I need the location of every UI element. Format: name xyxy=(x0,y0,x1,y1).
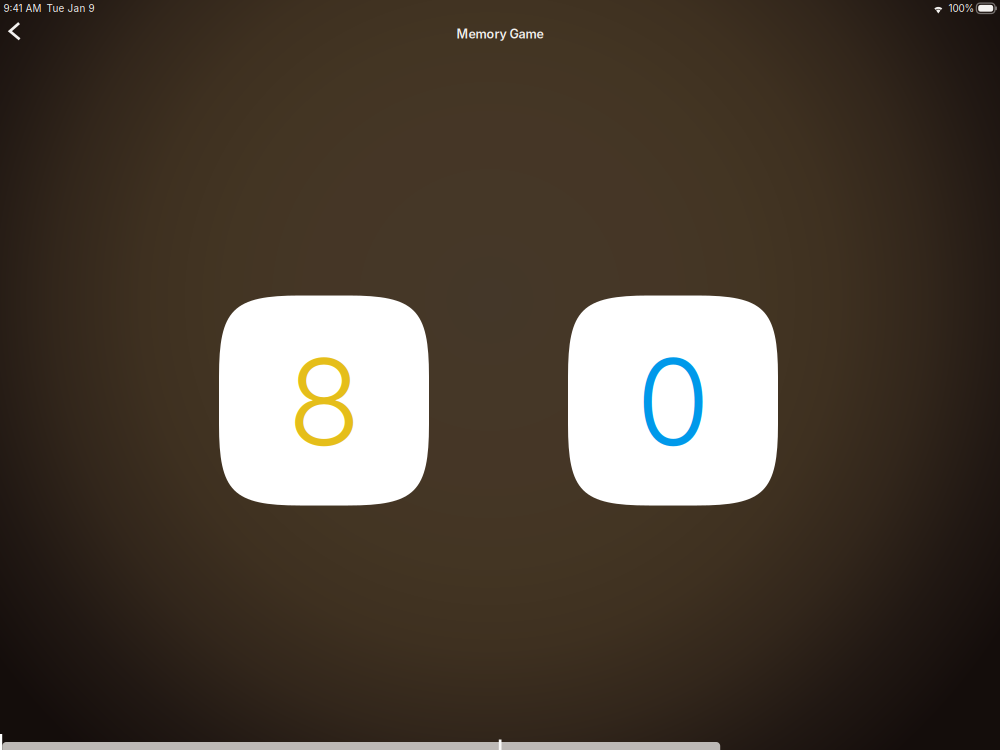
button[interactable]: Back xyxy=(0,16,30,46)
button[interactable]: 8 xyxy=(219,295,429,505)
button[interactable]: 0 xyxy=(568,295,778,505)
staticText: Memory Game xyxy=(456,26,543,42)
staticText: 9:41 AM xyxy=(3,2,41,14)
staticText: Tue Jan 9 xyxy=(46,2,94,14)
staticText: 0 xyxy=(636,329,710,474)
staticText: 8 xyxy=(287,329,360,474)
staticText: 100% xyxy=(948,2,974,14)
